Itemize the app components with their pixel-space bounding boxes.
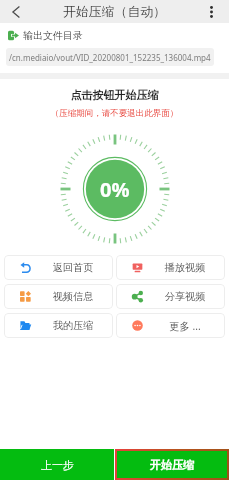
button[interactable]: 分享视频 bbox=[116, 284, 225, 309]
staticText: 视频信息 bbox=[32, 290, 113, 303]
staticText: 点击按钮开始压缩 bbox=[0, 88, 229, 102]
button[interactable]: 我的压缩 bbox=[4, 313, 113, 338]
button[interactable]: 上一步 bbox=[0, 449, 114, 480]
staticText: 更多 ... bbox=[144, 319, 225, 333]
staticText: 上一步 bbox=[41, 458, 74, 472]
button[interactable]: 视频信息 bbox=[4, 284, 113, 309]
staticText: 我的压缩 bbox=[32, 319, 113, 332]
staticText: 0% bbox=[100, 176, 130, 203]
staticText: （压缩期间，请不要退出此界面） bbox=[0, 108, 229, 119]
staticText: 输出文件目录 bbox=[23, 29, 83, 42]
button[interactable]: 开始压缩 bbox=[115, 449, 229, 480]
staticText: 开始压缩 bbox=[150, 458, 194, 472]
staticText: 分享视频 bbox=[144, 290, 225, 303]
staticText: 播放视频 bbox=[144, 261, 225, 274]
button[interactable]: 输出文件目录 bbox=[8, 29, 83, 42]
staticText: 返回首页 bbox=[32, 261, 113, 274]
staticText: /cn.mediaio/vout/VID_20200801_152235_136… bbox=[9, 52, 211, 63]
staticText: 开始压缩（自动） bbox=[63, 4, 167, 20]
button[interactable]: 返回 bbox=[0, 0, 31, 23]
button[interactable]: 更多 ... bbox=[116, 313, 225, 338]
button[interactable]: 更多选项 bbox=[198, 0, 229, 23]
button[interactable]: 返回首页 bbox=[4, 255, 113, 280]
button[interactable]: 播放视频 bbox=[116, 255, 225, 280]
